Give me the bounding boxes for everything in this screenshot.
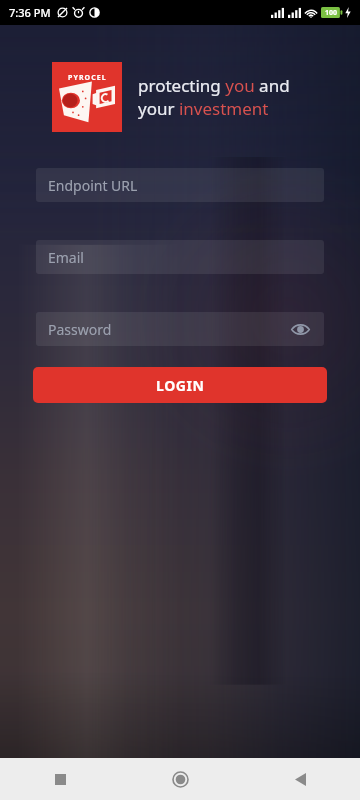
button[interactable]: LOGIN	[33, 367, 327, 403]
button[interactable]: Home	[120, 758, 240, 800]
staticText: 100	[325, 8, 338, 18]
button[interactable]: Back	[240, 758, 360, 800]
staticText: Endpoint URL	[48, 176, 138, 195]
button[interactable]: Endpoint URL	[36, 168, 324, 202]
staticText: 7:36 PM	[9, 5, 51, 20]
staticText: Password	[48, 320, 112, 339]
staticText: PYROCEL	[68, 73, 107, 83]
button[interactable]: Email	[36, 240, 324, 274]
button[interactable]: Show password	[288, 317, 312, 341]
staticText: protecting you and your investment	[138, 74, 290, 120]
button[interactable]: Password	[36, 312, 324, 346]
button[interactable]: Recent apps	[0, 758, 120, 800]
staticText: LOGIN	[156, 376, 205, 395]
staticText: Email	[48, 248, 84, 267]
